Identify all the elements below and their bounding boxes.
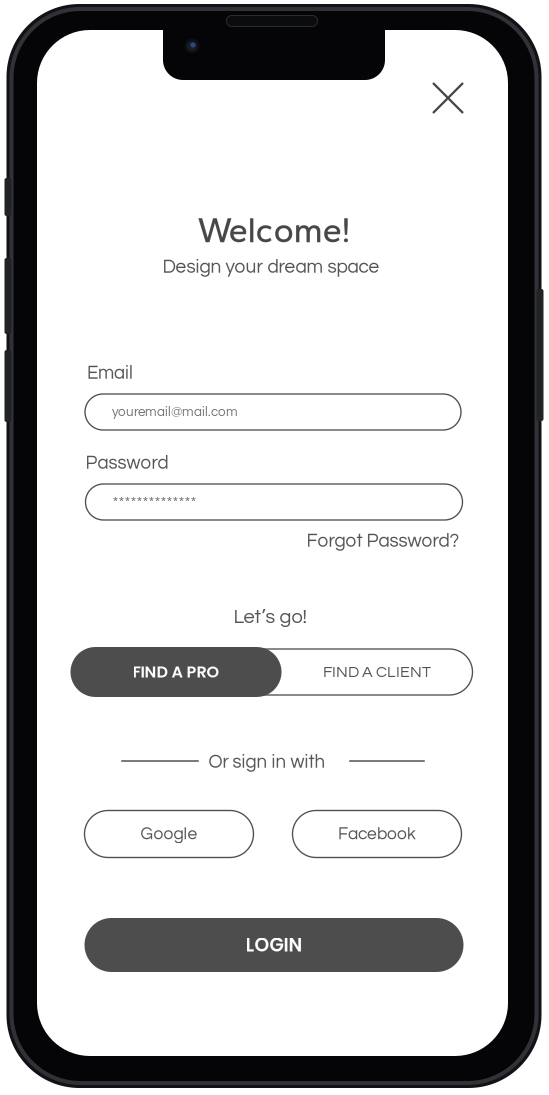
staticText: Password [85,453,168,473]
button[interactable]: Facebook [292,810,461,857]
button[interactable]: FIND A CLIENT [282,649,472,695]
button[interactable]: Google [84,810,253,857]
staticText: Or sign in with [208,752,325,772]
staticText: Facebook [338,825,416,843]
button[interactable]: Forgot Password? [303,528,462,554]
staticText: FIND A CLIENT [323,664,431,680]
staticText: youremail@mail.com [112,405,238,419]
staticText: Let’s go! [233,607,306,627]
staticText: FIND A PRO [132,661,219,683]
staticText: LOGIN [245,932,302,958]
staticText: Email [87,363,133,383]
button[interactable]: Close [419,69,477,127]
button[interactable]: LOGIN [84,918,463,972]
staticText: Welcome! [197,209,350,251]
staticText: Google [140,825,197,843]
button[interactable]: FIND A PRO [70,647,281,697]
staticText: Design your dream space [162,257,379,277]
staticText: ************** [112,494,196,510]
staticText: Forgot Password? [306,531,459,551]
